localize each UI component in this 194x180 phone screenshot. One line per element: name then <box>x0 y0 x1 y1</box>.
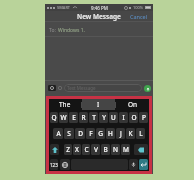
button[interactable]: Q <box>50 112 58 123</box>
staticText: V <box>94 145 98 154</box>
staticText: I <box>97 100 100 109</box>
button[interactable]: X <box>73 144 81 155</box>
button[interactable]: B <box>101 144 110 155</box>
staticText: On <box>128 100 138 109</box>
staticText: F <box>89 129 93 138</box>
staticText: M <box>123 145 129 154</box>
button[interactable]: I <box>82 99 115 110</box>
staticText: The <box>59 100 71 109</box>
staticText: C <box>84 145 89 154</box>
button[interactable]: A <box>53 128 63 139</box>
button[interactable]: S <box>64 128 74 139</box>
button[interactable]: Backspace <box>134 144 148 155</box>
button[interactable]: The <box>49 99 81 110</box>
button[interactable]: Cancel <box>127 11 153 22</box>
staticText: Cancel <box>130 13 148 20</box>
staticText: D <box>78 129 83 138</box>
button[interactable]: On <box>116 99 149 110</box>
button[interactable]: Text Message <box>64 84 142 92</box>
staticText: X <box>75 145 79 154</box>
staticText: K <box>128 129 133 138</box>
staticText: New Message <box>77 12 121 21</box>
button[interactable]: M <box>121 144 130 155</box>
button[interactable]: Return <box>139 159 148 170</box>
button[interactable]: L <box>136 128 145 139</box>
button[interactable]: E <box>69 112 78 123</box>
button[interactable]: Dictate <box>129 159 138 170</box>
button[interactable]: O <box>129 112 138 123</box>
button[interactable]: I <box>119 112 128 123</box>
staticText: Q <box>51 113 57 122</box>
staticText: SMART <box>57 5 71 10</box>
button[interactable]: D <box>75 128 85 139</box>
button[interactable]: Camera <box>48 85 56 91</box>
button[interactable]: J <box>116 128 125 139</box>
button[interactable]: W <box>59 112 68 123</box>
button[interactable]: C <box>82 144 90 155</box>
staticText: Y <box>102 113 106 122</box>
staticText: S <box>67 129 71 138</box>
staticText: G <box>98 129 103 138</box>
staticText: O <box>131 113 137 122</box>
button[interactable]: F <box>86 128 95 139</box>
button[interactable]: Y <box>99 112 108 123</box>
button[interactable]: R <box>79 112 88 123</box>
button[interactable]: Emoji <box>60 159 70 170</box>
button[interactable]: 123 <box>50 159 58 170</box>
staticText: E <box>72 113 76 122</box>
staticText: To: <box>49 27 56 34</box>
button[interactable]: P <box>139 112 148 123</box>
button[interactable]: Z <box>64 144 72 155</box>
staticText: L <box>139 129 143 138</box>
staticText: H <box>108 129 113 138</box>
staticText: W <box>60 113 67 122</box>
staticText: P <box>142 113 146 122</box>
staticText: 100% <box>133 5 144 10</box>
staticText: 9:46 PM <box>91 5 108 11</box>
staticText: A <box>56 129 61 138</box>
button[interactable]: G <box>96 128 105 139</box>
button[interactable]: K <box>126 128 135 139</box>
staticText: Z <box>66 145 70 154</box>
staticText: J <box>120 129 122 138</box>
button[interactable]: V <box>91 144 100 155</box>
staticText: T <box>92 113 96 122</box>
button[interactable]: U <box>109 112 118 123</box>
button[interactable]: Apps <box>58 86 62 90</box>
button[interactable]: T <box>89 112 98 123</box>
staticText: B <box>103 145 108 154</box>
staticText: I <box>122 113 125 122</box>
staticText: U <box>111 113 116 122</box>
staticText: 123 <box>50 162 58 168</box>
button[interactable]: N <box>111 144 120 155</box>
staticText: Windows 1. <box>58 27 85 34</box>
staticText: R <box>81 113 86 122</box>
button[interactable]: Shift <box>50 144 59 155</box>
button[interactable]: H <box>106 128 115 139</box>
staticText: N <box>113 145 118 154</box>
button[interactable]: Send <box>144 85 151 92</box>
staticText: Text Message <box>67 85 96 91</box>
